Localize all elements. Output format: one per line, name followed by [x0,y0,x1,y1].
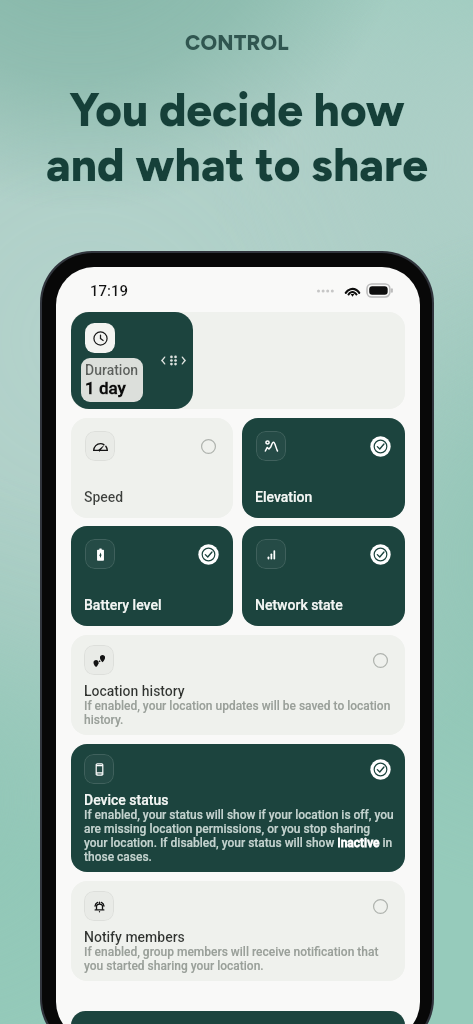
staticText: If enabled, group members will receive n… [84,945,394,973]
staticText: Elevation [255,489,313,505]
staticText: If enabled, your status will show if you… [84,808,394,864]
button[interactable] [71,1011,405,1024]
button[interactable]: Network state [242,526,405,626]
staticText: Network state [255,597,343,613]
staticText: 17:19 [90,282,129,300]
staticText: If enabled, your location updates will b… [84,699,394,727]
other: Reorder [160,354,187,367]
button[interactable]: Battery level [71,526,233,626]
button[interactable]: Device status [71,744,405,872]
staticText: CONTROL [185,30,289,55]
staticText: Speed [84,489,124,505]
button[interactable]: Speed [71,418,233,518]
staticText: Device status [84,792,169,808]
button[interactable]: Elevation [242,418,405,518]
staticText: Notify members [84,929,185,945]
staticText: You decide how and what to share [46,82,428,192]
button[interactable]: Notify members [71,881,405,981]
staticText: Location history [84,683,185,699]
button[interactable]: Duration [71,312,193,409]
button[interactable]: Location history [71,635,405,735]
staticText: Battery level [84,597,162,613]
staticText: 1 day [85,378,126,398]
staticText: Duration [85,362,139,378]
